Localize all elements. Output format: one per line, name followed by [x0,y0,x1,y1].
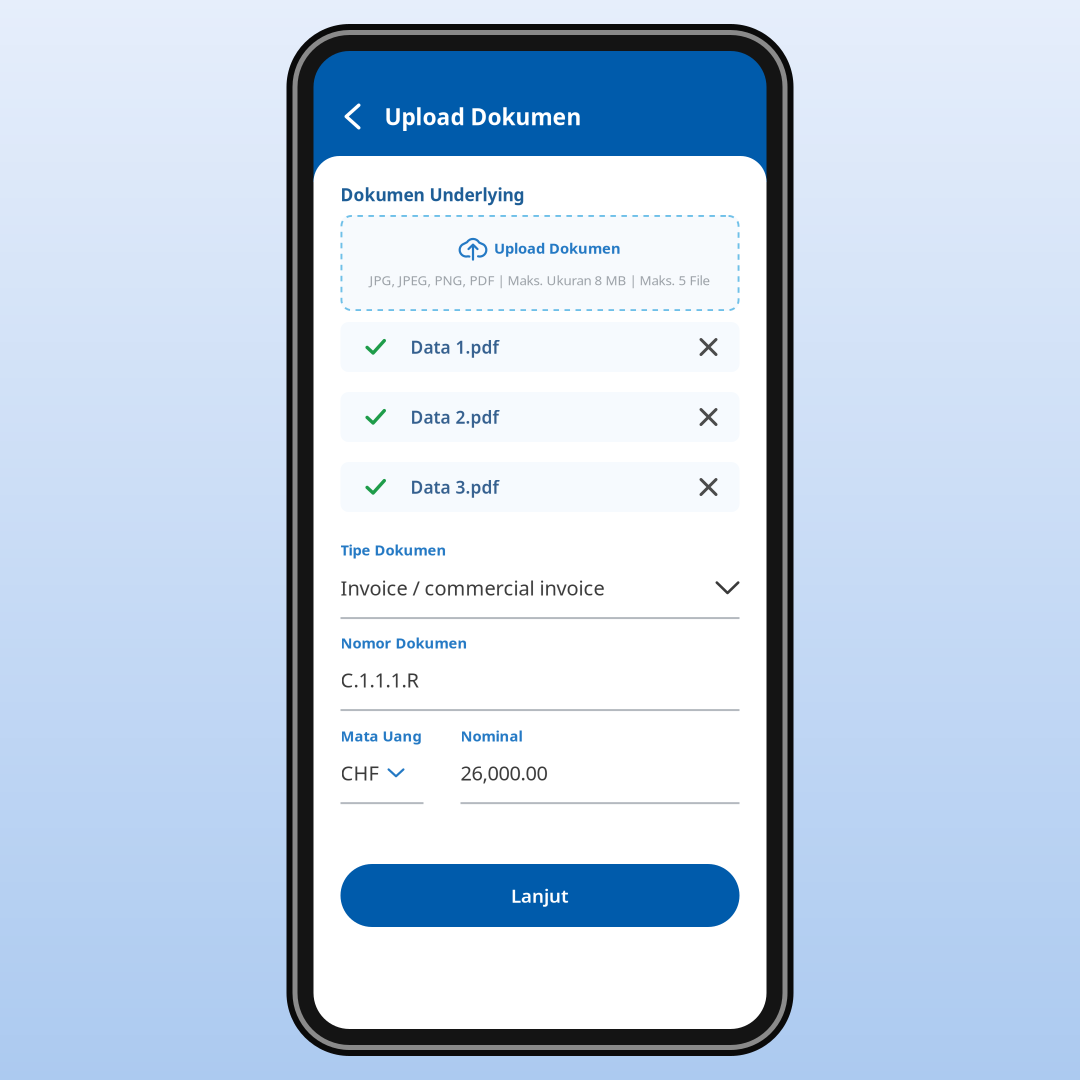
button[interactable]: Remove Data 1.pdf [677,322,739,372]
staticText: Dokumen Underlying [340,183,524,206]
staticText: 26,000.00 [460,760,547,786]
staticText: Tipe Dokumen [340,540,446,559]
button[interactable]: Remove Data 2.pdf [677,392,739,442]
staticText: Upload Dokumen [494,238,621,258]
staticText: Nominal [460,726,522,746]
staticText: Invoice / commercial invoice [340,574,604,601]
staticText: Mata Uang [340,726,421,746]
button[interactable]: Upload Dokumen [340,215,739,311]
staticText: CHF [340,760,378,786]
staticText: JPG, JPEG, PNG, PDF | Maks. Ukuran 8 MB … [369,271,710,289]
staticText: Lanjut [511,883,569,908]
staticText: Upload Dokumen [384,101,581,131]
staticText: Nomor Dokumen [340,633,467,653]
staticText: Data 3.pdf [410,475,498,498]
staticText: Data 1.pdf [410,335,498,358]
staticText: Data 2.pdf [410,405,498,428]
button[interactable]: Back [320,85,384,147]
button[interactable]: Remove Data 3.pdf [677,462,739,512]
button[interactable]: Mata Uang: CHF [340,746,423,802]
staticText: C.1.1.1.R [340,666,418,693]
button[interactable]: Tipe Dokumen: Invoice / commercial invoi… [340,559,739,617]
button[interactable]: Lanjut [340,864,739,927]
